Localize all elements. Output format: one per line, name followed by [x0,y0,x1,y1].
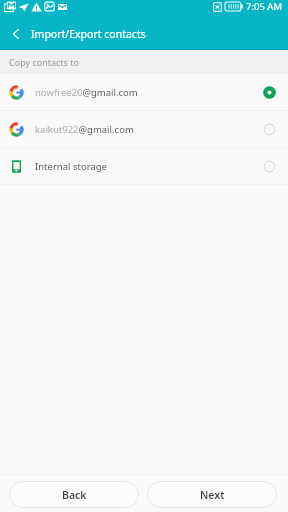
button[interactable]: nowfree20@gmail.com [0,74,288,110]
staticText: Back [62,488,87,502]
button[interactable]: kaikut922@gmail.com [0,111,288,147]
staticText: Internal storage [35,160,107,173]
staticText: 7:05 AM [246,0,283,13]
staticText: nowfree20@gmail.com [35,86,138,99]
button[interactable]: Back [0,19,31,49]
button[interactable]: Internal storage [0,148,288,184]
staticText: Import/Export contacts [31,27,146,41]
button[interactable]: Back [9,481,139,508]
staticText: Copy contacts to [9,56,79,68]
staticText: Next [200,488,225,502]
button[interactable]: Next [147,481,277,508]
staticText: kaikut922@gmail.com [35,123,134,136]
